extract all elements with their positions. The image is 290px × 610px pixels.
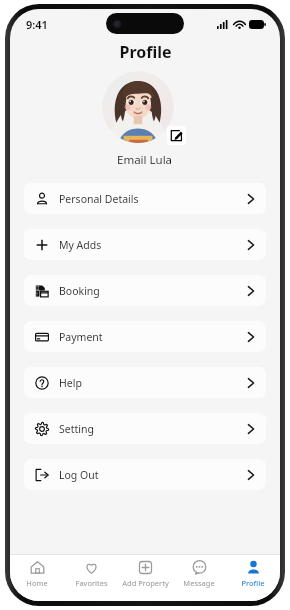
button[interactable]: Home <box>10 555 64 601</box>
button[interactable]: Payment <box>24 321 266 352</box>
button[interactable]: Log Out <box>24 459 266 490</box>
button[interactable]: Message <box>172 555 226 601</box>
staticText: Log Out <box>59 468 247 482</box>
staticText: Payment <box>59 330 247 344</box>
button[interactable] <box>102 71 174 143</box>
button[interactable]: My Adds <box>24 229 266 260</box>
staticText: Email Lula <box>117 152 173 168</box>
staticText: Personal Details <box>59 192 247 206</box>
staticText: Booking <box>59 284 247 298</box>
staticText: 9:41 <box>26 17 48 32</box>
staticText: Add Property <box>122 578 169 588</box>
button[interactable]: Setting <box>24 413 266 444</box>
button[interactable]: Help <box>24 367 266 398</box>
button[interactable]: Personal Details <box>24 183 266 214</box>
staticText: Setting <box>59 422 247 436</box>
button[interactable]: Add Property <box>118 555 172 601</box>
button[interactable]: Favorites <box>64 555 118 601</box>
staticText: Profile <box>241 578 265 588</box>
staticText: Profile <box>119 41 172 63</box>
button[interactable]: Booking <box>24 275 266 306</box>
staticText: Message <box>183 578 215 588</box>
staticText: Help <box>59 376 247 390</box>
button[interactable]: Profile <box>226 555 280 601</box>
staticText: My Adds <box>59 238 247 252</box>
staticText: Favorites <box>75 578 108 588</box>
button[interactable]: Edit profile photo <box>167 126 186 145</box>
staticText: Home <box>26 578 48 588</box>
